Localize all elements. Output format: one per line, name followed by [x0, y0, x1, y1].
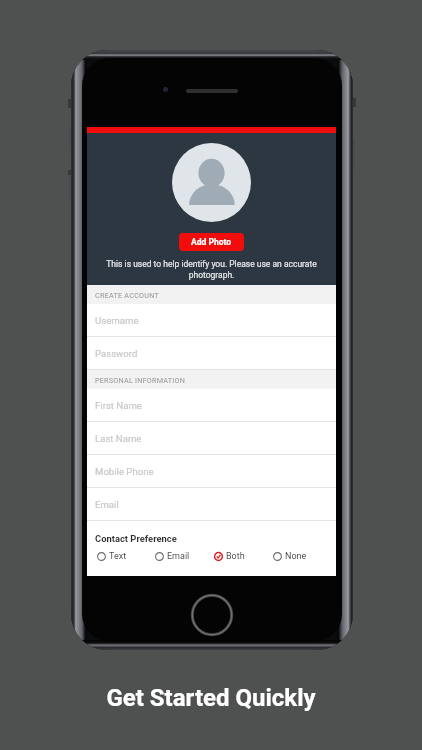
staticText: Text	[109, 551, 127, 562]
button[interactable]: Profile photo	[172, 143, 251, 222]
staticText: Both	[226, 551, 245, 562]
staticText: First Name	[95, 400, 142, 411]
staticText: CREATE ACCOUNT	[95, 291, 160, 299]
button[interactable]: None	[273, 547, 307, 565]
button[interactable]: Text	[97, 547, 127, 565]
staticText: Username	[95, 315, 139, 326]
staticText: This is used to help identify you. Pleas…	[105, 259, 318, 280]
staticText: Add Photo	[191, 237, 232, 247]
staticText: Get Started Quickly	[0, 684, 422, 712]
staticText: Email	[95, 499, 119, 510]
button[interactable]: Both	[214, 547, 245, 565]
button[interactable]: First Name	[87, 389, 336, 422]
staticText: Password	[95, 348, 138, 359]
staticText: Contact Preference	[95, 533, 177, 544]
button[interactable]: Mobile Phone	[87, 455, 336, 488]
staticText: Mobile Phone	[95, 466, 154, 477]
button[interactable]: Password	[87, 337, 336, 370]
staticText: Email	[167, 551, 190, 562]
staticText: None	[285, 551, 307, 562]
button[interactable]: Username	[87, 304, 336, 337]
button[interactable]: Email	[87, 488, 336, 521]
button[interactable]: Add Photo	[179, 233, 244, 251]
button[interactable]: Email	[155, 547, 190, 565]
staticText: Last Name	[95, 433, 142, 444]
button[interactable]: Last Name	[87, 422, 336, 455]
staticText: PERSONAL INFORMATION	[95, 376, 186, 384]
button[interactable]: Home	[191, 594, 233, 636]
